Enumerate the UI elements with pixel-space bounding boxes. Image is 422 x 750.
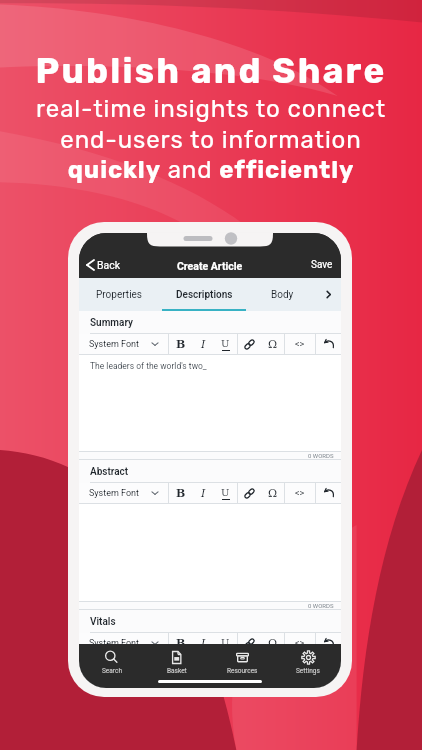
button[interactable]: Undo	[316, 633, 341, 653]
staticText: The leaders of the world's two_	[90, 361, 207, 371]
button[interactable]: More tabs	[315, 278, 341, 311]
staticText: Abstract	[90, 466, 129, 478]
staticText: Resources	[227, 667, 258, 675]
button[interactable]: Save	[303, 256, 341, 274]
button[interactable]: Descriptions	[159, 278, 249, 311]
staticText: Ω	[268, 487, 278, 500]
button[interactable]: Body	[249, 278, 315, 311]
button[interactable]: Settings	[275, 648, 341, 677]
staticText: U	[221, 637, 230, 649]
button[interactable]: Search	[79, 648, 144, 677]
button[interactable]: Ω	[261, 334, 284, 354]
button[interactable]: <>	[285, 334, 315, 354]
staticText: System Font	[89, 488, 140, 499]
other: Insert link	[243, 487, 256, 500]
button[interactable]: Ω	[261, 483, 284, 503]
staticText: System Font	[89, 339, 140, 350]
staticText: <>	[295, 638, 305, 649]
staticText: Descriptions	[176, 289, 233, 301]
button[interactable]: Insert link	[238, 633, 261, 653]
button[interactable]: U	[214, 483, 237, 503]
staticText: Save	[311, 259, 333, 271]
button[interactable]: B	[169, 334, 192, 354]
other: Insert link	[243, 338, 256, 351]
button[interactable]: B	[169, 633, 192, 653]
button[interactable]: Undo	[316, 334, 341, 354]
staticText: System Font	[89, 638, 140, 649]
button[interactable]: <>	[285, 633, 315, 653]
button[interactable]: I	[192, 334, 214, 354]
staticText: real-time insights to connect end-users …	[0, 95, 422, 184]
button[interactable]: U	[214, 633, 237, 653]
staticText: 0 WORDS	[308, 602, 334, 609]
button[interactable]: Insert link	[238, 483, 261, 503]
staticText: <>	[295, 339, 305, 350]
other: Insert link	[243, 637, 256, 650]
staticText: Properties	[96, 289, 143, 301]
staticText: Publish and Share	[0, 50, 422, 91]
staticText: Body	[271, 289, 294, 301]
button[interactable]: Insert link	[238, 334, 261, 354]
staticText: Search	[102, 667, 122, 675]
staticText: I	[201, 637, 206, 650]
other: Undo	[323, 637, 335, 649]
button[interactable]: Back	[79, 256, 127, 274]
button[interactable]: Undo	[316, 483, 341, 503]
button[interactable]: B	[169, 483, 192, 503]
button[interactable]: U	[214, 334, 237, 354]
staticText: 0 WORDS	[308, 452, 334, 459]
button[interactable]: Basket	[144, 648, 209, 677]
staticText: <>	[295, 488, 305, 499]
button[interactable]: <>	[285, 483, 315, 503]
staticText: B	[176, 487, 186, 500]
button[interactable]: Properties	[79, 278, 159, 311]
staticText: Settings	[296, 667, 320, 675]
staticText: Basket	[167, 667, 187, 675]
staticText: Ω	[268, 338, 278, 351]
other: Undo	[323, 487, 335, 499]
staticText: Create Article	[177, 260, 243, 272]
button[interactable]: System Font	[79, 633, 168, 653]
other: Undo	[323, 338, 335, 350]
button[interactable]: System Font	[79, 483, 168, 503]
button[interactable]: I	[192, 483, 214, 503]
staticText: U	[221, 487, 230, 499]
staticText: Back	[97, 259, 121, 271]
staticText: I	[201, 338, 206, 351]
button[interactable]: I	[192, 633, 214, 653]
staticText: U	[221, 338, 230, 350]
button[interactable]: System Font	[79, 334, 168, 354]
staticText: I	[201, 487, 206, 500]
staticText: B	[176, 338, 186, 351]
staticText: Vitals	[90, 616, 116, 628]
staticText: Summary	[90, 317, 134, 329]
button[interactable]: Resources	[209, 648, 275, 677]
staticText: Ω	[268, 637, 278, 650]
button[interactable]: Ω	[261, 633, 284, 653]
staticText: B	[176, 637, 186, 650]
